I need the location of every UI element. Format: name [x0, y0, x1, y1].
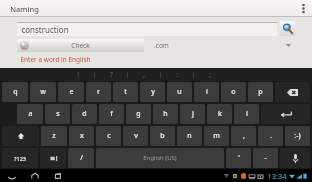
button[interactable]: l [234, 104, 259, 124]
staticText: construction [21, 24, 69, 35]
button[interactable]: ! [62, 68, 94, 81]
staticText: ? [110, 70, 113, 79]
staticText: i [206, 87, 208, 97]
button[interactable]: i [194, 82, 219, 102]
staticText: b [160, 131, 165, 141]
button[interactable]: r [86, 82, 111, 102]
button[interactable]: ' [226, 148, 251, 168]
button[interactable]: z [41, 126, 67, 146]
button[interactable]: Search [280, 21, 295, 36]
button[interactable]: More options [294, 0, 312, 17]
button[interactable]: d [72, 104, 97, 124]
button[interactable]: h [153, 104, 178, 124]
button[interactable]: Shift [2, 126, 39, 146]
staticText: e [69, 87, 74, 97]
button[interactable]: p [248, 82, 273, 102]
staticText: .com [154, 41, 169, 50]
staticText: w [40, 87, 46, 97]
staticText: u [177, 87, 182, 97]
staticText: Naming [10, 4, 39, 14]
staticText: x [80, 131, 84, 141]
button[interactable]: u [167, 82, 192, 102]
staticText: , [143, 70, 145, 79]
staticText: ; [209, 70, 211, 79]
button[interactable]: . [258, 126, 283, 146]
button[interactable]: o [221, 82, 246, 102]
staticText: t [124, 87, 127, 97]
button[interactable]: ? [95, 68, 127, 81]
button[interactable]: s [45, 104, 70, 124]
staticText: English (US) [143, 154, 177, 162]
staticText: 13:34 [267, 171, 287, 181]
staticText: r [97, 87, 100, 97]
button[interactable]: ; [194, 68, 226, 81]
staticText: g [136, 109, 141, 119]
button[interactable]: Backspace [275, 82, 310, 102]
button[interactable]: construction [17, 21, 277, 36]
button[interactable]: e [58, 82, 84, 102]
button[interactable]: b [150, 126, 175, 146]
staticText: / [80, 153, 83, 163]
button[interactable]: Voice input [280, 148, 310, 168]
button[interactable]: w [30, 82, 56, 102]
button[interactable]: q [2, 82, 28, 102]
button[interactable]: , [231, 126, 256, 146]
staticText: d [82, 109, 87, 119]
staticText: o [231, 87, 236, 97]
staticText: v [134, 131, 138, 141]
button[interactable]: , [128, 68, 160, 81]
staticText: a [28, 109, 33, 119]
staticText: n [187, 131, 192, 141]
button[interactable]: Home [29, 170, 40, 181]
button[interactable]: t [113, 82, 138, 102]
button[interactable]: Recents [52, 170, 63, 181]
staticText: , [243, 131, 245, 141]
button[interactable]: : [161, 68, 193, 81]
button[interactable]: c [96, 126, 121, 146]
staticText: y [151, 87, 155, 97]
staticText: . [270, 131, 272, 141]
button[interactable]: n [177, 126, 202, 146]
staticText: l [246, 109, 248, 119]
staticText: ?123 [14, 155, 26, 162]
staticText: ' [238, 153, 240, 163]
button[interactable]: - [253, 148, 278, 168]
button[interactable]: j [180, 104, 205, 124]
button[interactable]: Check [17, 39, 144, 52]
staticText: - [264, 153, 267, 163]
button[interactable]: Back [6, 170, 17, 181]
staticText: :-) [294, 131, 301, 141]
staticText: q [13, 87, 18, 97]
button[interactable]: x [69, 126, 94, 146]
button[interactable]: Enter [261, 104, 310, 124]
staticText: Check [71, 41, 90, 50]
staticText: j [192, 109, 194, 119]
staticText: ! [77, 70, 79, 79]
button[interactable]: ?123 [2, 148, 38, 168]
button[interactable]: Input method [40, 148, 66, 168]
button[interactable]: English (US) [96, 148, 224, 168]
staticText: f [110, 109, 113, 119]
button[interactable]: .com [152, 39, 295, 52]
staticText: : [176, 70, 178, 79]
staticText: z [52, 131, 56, 141]
staticText: p [258, 87, 263, 97]
button[interactable]: a [17, 104, 43, 124]
staticText: s [56, 109, 60, 119]
button[interactable]: m [204, 126, 229, 146]
staticText: k [218, 109, 222, 119]
button[interactable]: f [99, 104, 124, 124]
button[interactable]: :-) [285, 126, 310, 146]
button[interactable]: g [126, 104, 151, 124]
staticText: c [107, 131, 111, 141]
staticText: h [163, 109, 168, 119]
button[interactable]: / [68, 148, 94, 168]
button[interactable]: y [140, 82, 165, 102]
button[interactable]: k [207, 104, 232, 124]
staticText: Enter a word in English [20, 55, 91, 64]
staticText: m [213, 131, 220, 141]
button[interactable]: v [123, 126, 148, 146]
